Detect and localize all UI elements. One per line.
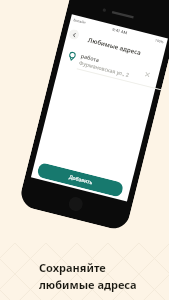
staticText: Фурмановская ул., 2 bbox=[79, 59, 131, 78]
staticText: Добавить bbox=[68, 174, 93, 186]
button[interactable]: Back bbox=[68, 28, 80, 40]
staticText: Любимые адреса bbox=[87, 35, 143, 56]
staticText: 9:41 AM bbox=[112, 27, 129, 35]
button[interactable]: работа bbox=[59, 43, 160, 88]
staticText: любимые адреса bbox=[39, 277, 137, 292]
staticText: работа bbox=[80, 52, 100, 63]
staticText: 100% bbox=[154, 37, 164, 44]
staticText: Сохраняйте bbox=[39, 260, 106, 275]
button[interactable]: Remove address bbox=[141, 68, 153, 81]
button[interactable]: Добавить bbox=[36, 162, 124, 198]
staticText: Билайн bbox=[73, 17, 87, 25]
